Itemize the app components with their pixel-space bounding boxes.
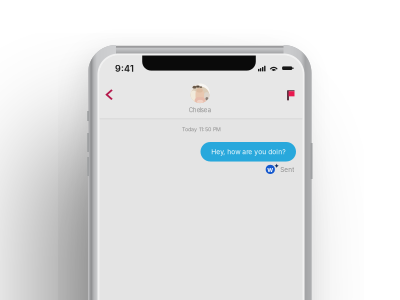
staticText: Chelsea (189, 106, 211, 114)
staticText: w (267, 165, 273, 174)
button[interactable]: Chelsea (190, 83, 210, 103)
staticText: Sent (280, 166, 294, 173)
staticText: Hey, how are you doin? (211, 148, 285, 156)
button[interactable]: Report conversation (278, 86, 298, 106)
staticText: Today 11:50 PM (182, 126, 221, 133)
button[interactable]: Back (101, 85, 121, 105)
staticText: 9:41 (115, 63, 134, 74)
